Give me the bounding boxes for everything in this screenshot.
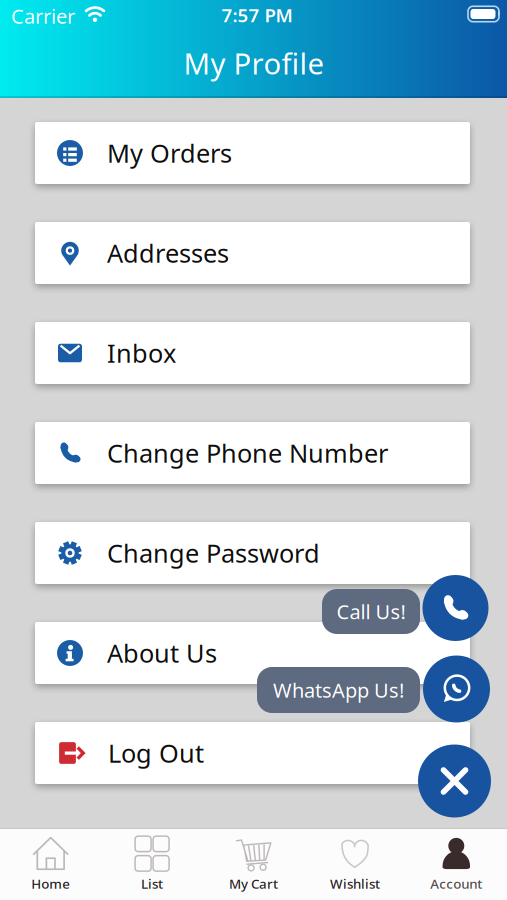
button[interactable]: Call Us [422, 575, 488, 641]
staticText: Account [430, 875, 482, 892]
button[interactable]: List [101, 828, 203, 900]
button[interactable]: WhatsApp Us [423, 655, 490, 722]
button[interactable]: Account [406, 828, 507, 900]
staticText: About Us [107, 636, 217, 670]
staticText: Log Out [108, 736, 204, 770]
staticText: Wishlist [330, 875, 380, 892]
button[interactable]: My Cart [203, 828, 304, 900]
staticText: WhatsApp Us! [273, 677, 404, 703]
staticText: Home [31, 875, 70, 892]
button[interactable]: Call Us! [322, 589, 420, 634]
staticText: My Orders [107, 136, 232, 170]
button[interactable]: WhatsApp Us! [257, 667, 420, 713]
button[interactable]: About Us [35, 622, 470, 684]
button[interactable]: Wishlist [304, 828, 406, 900]
button[interactable]: Close [418, 744, 491, 817]
staticText: Change Phone Number [107, 436, 388, 470]
button[interactable]: My Orders [35, 122, 470, 184]
button[interactable]: Home [0, 828, 101, 900]
staticText: My Profile [183, 43, 324, 82]
button[interactable]: Inbox [35, 322, 470, 384]
staticText: 7:57 PM [221, 3, 292, 27]
staticText: Addresses [107, 236, 229, 270]
button[interactable]: Addresses [35, 222, 470, 284]
button[interactable]: Change Phone Number [35, 422, 470, 484]
staticText: My Cart [229, 875, 278, 892]
staticText: Change Password [107, 536, 320, 570]
staticText: Carrier [11, 3, 75, 29]
staticText: Inbox [107, 336, 176, 370]
button[interactable]: Log Out [35, 722, 470, 784]
button[interactable]: Change Password [35, 522, 470, 584]
staticText: List [141, 875, 163, 892]
staticText: Call Us! [336, 598, 405, 625]
